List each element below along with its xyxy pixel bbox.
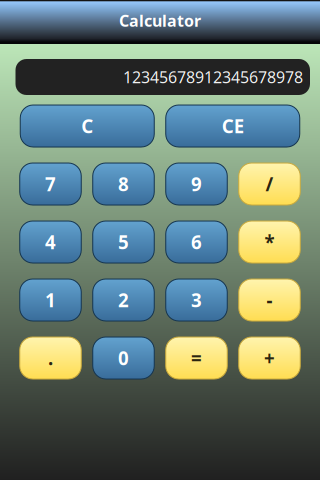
staticText: 0 (118, 346, 129, 370)
staticText: 4 (45, 230, 56, 254)
button[interactable]: / (239, 163, 300, 205)
button[interactable]: 3 (166, 279, 227, 321)
staticText: / (265, 172, 273, 196)
button[interactable]: 9 (166, 163, 227, 205)
button[interactable]: 1 (20, 279, 81, 321)
staticText: 8 (118, 172, 129, 196)
button[interactable]: 7 (20, 163, 81, 205)
staticText: 3 (191, 288, 202, 312)
button[interactable]: * (239, 221, 300, 263)
staticText: Calculator (119, 10, 201, 31)
staticText: - (266, 288, 272, 312)
staticText: 9 (191, 172, 202, 196)
button[interactable]: - (239, 279, 300, 321)
staticText: * (264, 230, 274, 254)
staticText: 6 (191, 230, 202, 254)
button[interactable]: 4 (20, 221, 81, 263)
staticText: 7 (45, 172, 56, 196)
button[interactable]: . (20, 337, 81, 379)
button[interactable]: 5 (93, 221, 154, 263)
staticText: 2 (118, 288, 129, 312)
staticText: 12345678912345678978 (123, 66, 303, 88)
button[interactable]: 8 (93, 163, 154, 205)
staticText: 1 (45, 288, 56, 312)
staticText: . (48, 346, 53, 370)
button[interactable]: = (166, 337, 227, 379)
staticText: = (191, 346, 202, 370)
button[interactable]: C (20, 105, 154, 147)
button[interactable]: + (239, 337, 300, 379)
staticText: C (81, 114, 93, 138)
staticText: 5 (118, 230, 129, 254)
button[interactable]: 0 (93, 337, 154, 379)
staticText: + (264, 346, 275, 370)
button[interactable]: CE (166, 105, 300, 147)
button[interactable]: 6 (166, 221, 227, 263)
button[interactable]: 2 (93, 279, 154, 321)
staticText: CE (222, 114, 244, 138)
